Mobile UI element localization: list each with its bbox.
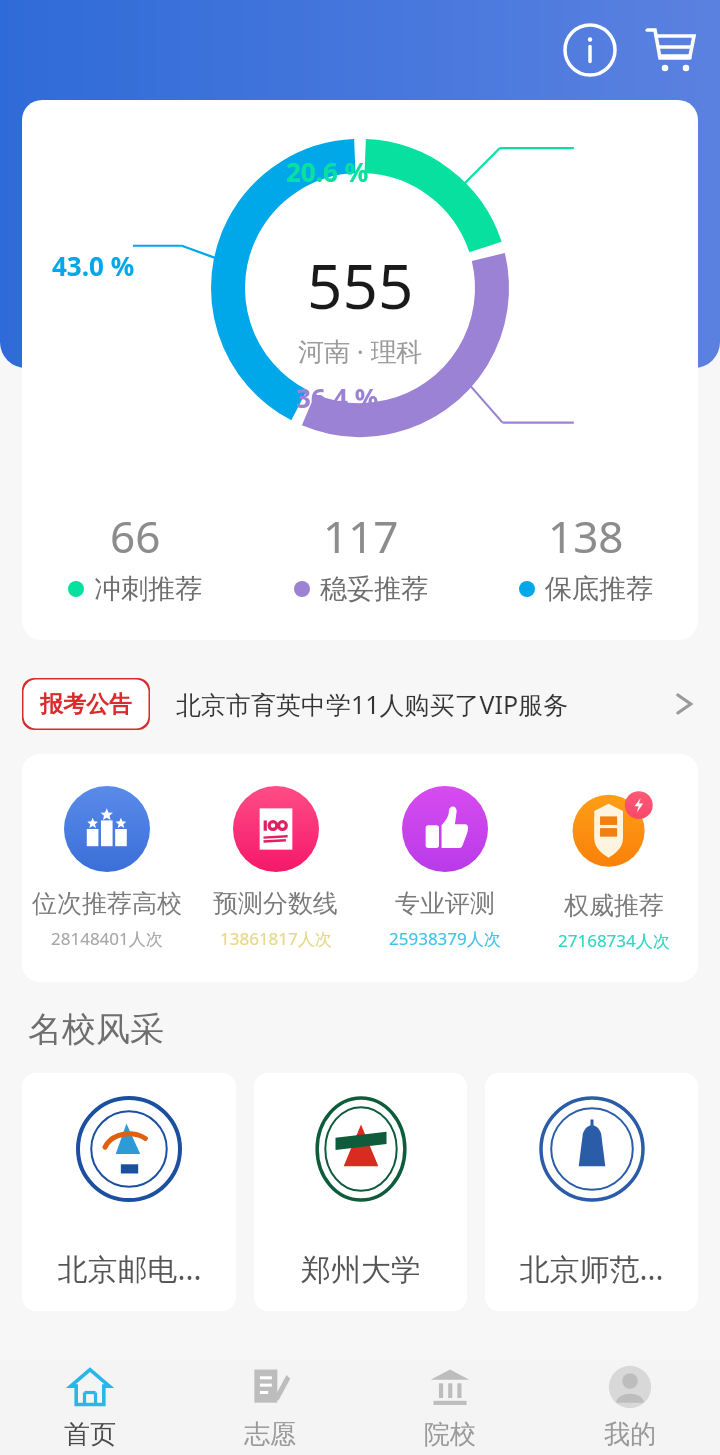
button[interactable]: 报考公告	[0, 662, 720, 746]
staticText: 43.0 %	[52, 248, 135, 283]
button[interactable]: Shopping cart	[638, 18, 702, 82]
staticText: 25938379人次	[389, 927, 501, 950]
button[interactable]: 我的	[540, 1360, 720, 1455]
button[interactable]: 院校	[360, 1360, 540, 1455]
staticText: 555	[307, 243, 414, 327]
staticText: 保底推荐	[545, 572, 653, 606]
button[interactable]: 首页	[0, 1360, 180, 1455]
staticText: 权威推荐	[564, 890, 664, 921]
staticText: 郑州大学	[301, 1251, 421, 1289]
staticText: 28148401人次	[51, 927, 163, 950]
staticText: 专业评测	[395, 888, 495, 919]
staticText: 名校风采	[28, 1008, 164, 1051]
button[interactable]: 555	[22, 100, 698, 640]
staticText: 138	[548, 506, 624, 566]
button[interactable]: 郑州大学	[254, 1073, 467, 1311]
staticText: 13861817人次	[220, 927, 332, 950]
staticText: 北京师范...	[519, 1248, 664, 1289]
staticText: 20.6 %	[286, 154, 369, 189]
button[interactable]: 66	[22, 506, 248, 606]
staticText: 首页	[64, 1418, 116, 1451]
staticText: 河南 · 理科	[298, 333, 423, 369]
button[interactable]: 专业评测	[360, 754, 529, 982]
button[interactable]: 117	[248, 506, 473, 606]
button[interactable]: 北京邮电...	[22, 1073, 236, 1311]
staticText: 报考公告	[40, 690, 132, 719]
staticText: 117	[323, 506, 399, 566]
button[interactable]: 138	[473, 506, 698, 606]
staticText: 院校	[424, 1418, 476, 1451]
staticText: 志愿	[244, 1418, 296, 1451]
button[interactable]: 北京师范...	[485, 1073, 698, 1311]
staticText: 位次推荐高校	[32, 888, 182, 919]
staticText: 北京市育英中学11人购买了VIP服务	[176, 687, 569, 721]
staticText: 预测分数线	[213, 888, 338, 919]
button[interactable]: 权威推荐	[529, 754, 698, 982]
staticText: 冲刺推荐	[94, 572, 202, 606]
button[interactable]: Information	[558, 18, 622, 82]
staticText: 27168734人次	[558, 929, 670, 952]
staticText: 我的	[604, 1418, 656, 1451]
button[interactable]: 志愿	[180, 1360, 360, 1455]
staticText: 66	[110, 506, 161, 566]
staticText: 北京邮电...	[57, 1248, 202, 1289]
button[interactable]: 位次推荐高校	[22, 754, 191, 982]
staticText: 36.4 %	[296, 380, 379, 415]
button[interactable]: 预测分数线	[191, 754, 360, 982]
staticText: 稳妥推荐	[320, 572, 428, 606]
